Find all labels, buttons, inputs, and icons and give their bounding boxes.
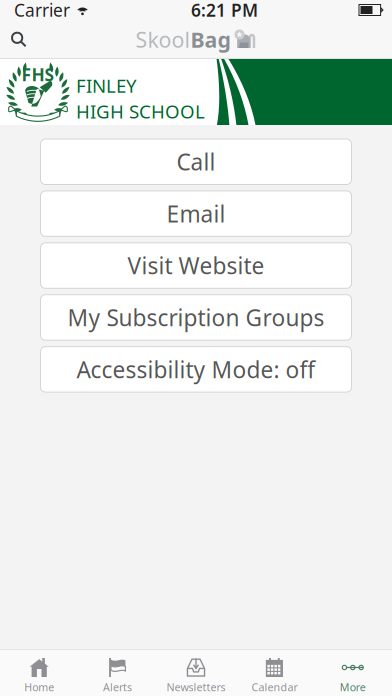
button[interactable]: Accessibility Mode: off xyxy=(40,347,351,392)
button[interactable]: Visit Website xyxy=(40,243,351,288)
button[interactable]: My Subscription Groups xyxy=(40,295,351,340)
staticText: Accessibility Mode: off xyxy=(76,354,315,384)
button[interactable]: Calendar xyxy=(235,649,314,696)
staticText: 6:21 PM xyxy=(191,0,258,21)
staticText: Calendar xyxy=(251,680,297,694)
button[interactable]: Alerts xyxy=(78,649,157,696)
staticText: Carrier xyxy=(14,0,70,21)
staticText: My Subscription Groups xyxy=(67,302,324,332)
staticText: Home xyxy=(24,680,54,694)
staticText: HIGH SCHOOL xyxy=(76,99,205,124)
button[interactable]: Search xyxy=(0,21,37,58)
button[interactable]: Home xyxy=(0,649,78,696)
staticText: Skool xyxy=(135,25,190,54)
staticText: Newsletters xyxy=(166,680,225,694)
button[interactable]: Email xyxy=(40,191,351,236)
staticText: Visit Website xyxy=(127,250,264,281)
button[interactable]: More xyxy=(314,649,392,696)
staticText: More xyxy=(340,680,366,694)
staticText: Bag xyxy=(190,25,230,54)
staticText: Email xyxy=(166,199,225,229)
staticText: Call xyxy=(176,147,215,177)
button[interactable]: Call xyxy=(40,139,351,184)
staticText: Alerts xyxy=(103,680,132,694)
staticText: FHS xyxy=(21,63,54,86)
button[interactable]: Newsletters xyxy=(157,649,235,696)
staticText: FINLEY xyxy=(76,73,137,98)
